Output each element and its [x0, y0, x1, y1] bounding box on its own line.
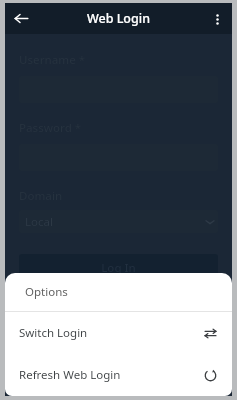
other: Switch Login: [202, 325, 218, 341]
staticText: Refresh Web Login: [19, 367, 121, 383]
other: Refresh Web Login: [202, 367, 218, 383]
staticText: Switch Login: [19, 325, 88, 341]
staticText: Options: [25, 284, 68, 300]
staticText: Web Login: [87, 10, 150, 27]
staticText: Local: [25, 214, 53, 230]
staticText: Log In: [101, 260, 136, 276]
button[interactable]: Back: [5, 3, 37, 34]
button[interactable]: Refresh Web Login: [5, 354, 232, 396]
button[interactable]: Log In: [19, 254, 218, 282]
button[interactable]: More options: [202, 4, 232, 34]
button[interactable]: Switch Login: [5, 312, 232, 354]
